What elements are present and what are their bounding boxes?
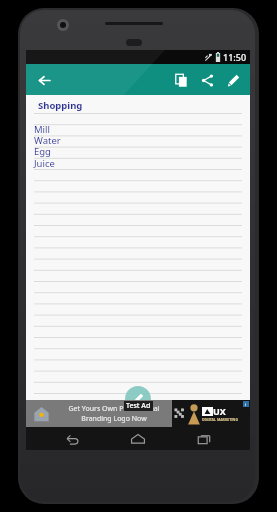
staticText: Branding Logo Now bbox=[81, 414, 147, 424]
button[interactable]: Edit bbox=[220, 67, 246, 93]
button[interactable]: Share bbox=[194, 67, 220, 93]
staticText: DIGITAL MARKETING bbox=[202, 417, 238, 422]
button[interactable]: Egg bbox=[34, 145, 51, 158]
staticText: Shopping bbox=[38, 99, 83, 112]
staticText: Egg bbox=[34, 145, 51, 158]
staticText: Juice bbox=[34, 157, 55, 170]
staticText: Test Ad bbox=[126, 401, 151, 411]
button[interactable]: Recents bbox=[184, 428, 224, 450]
staticText: Mill bbox=[34, 123, 50, 136]
staticText: 11:50 bbox=[223, 51, 247, 63]
staticText: UX bbox=[213, 405, 226, 417]
button[interactable]: Water bbox=[34, 134, 61, 147]
button[interactable]: New note bbox=[125, 386, 151, 412]
staticText: Get Yours Own Professional bbox=[68, 404, 160, 414]
staticText: i bbox=[245, 402, 247, 407]
staticText: Water bbox=[34, 134, 61, 147]
button[interactable]: Home bbox=[118, 428, 158, 450]
button[interactable]: Back bbox=[52, 428, 92, 450]
button[interactable]: Juice bbox=[34, 157, 55, 170]
button[interactable]: Back bbox=[32, 68, 56, 92]
button[interactable]: Copy bbox=[168, 67, 194, 93]
button[interactable]: Mill bbox=[34, 123, 50, 136]
button[interactable]: Get Yours Own Professional bbox=[26, 400, 250, 427]
